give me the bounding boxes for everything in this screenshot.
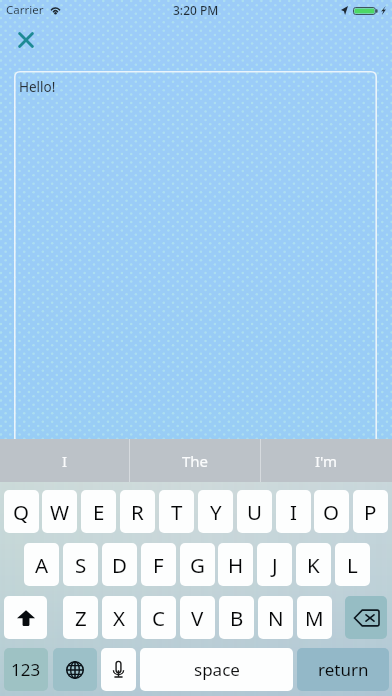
staticText: Z	[75, 604, 87, 632]
button[interactable]: K	[296, 543, 331, 586]
button[interactable]: R	[120, 490, 155, 533]
button[interactable]: M	[297, 596, 332, 639]
staticText: The	[182, 451, 209, 471]
button[interactable]: I	[0, 439, 130, 482]
staticText: N	[268, 604, 284, 632]
button[interactable]: H	[218, 543, 253, 586]
button[interactable]: 123	[4, 648, 48, 691]
button[interactable]: F	[141, 543, 176, 586]
staticText: W	[50, 498, 70, 526]
staticText: T	[171, 498, 183, 526]
button[interactable]: Dictate	[101, 648, 136, 691]
staticText: I	[62, 451, 68, 471]
staticText: G	[190, 551, 205, 579]
button[interactable]: X	[102, 596, 137, 639]
staticText: P	[364, 498, 377, 526]
staticText: V	[191, 604, 204, 632]
staticText: O	[323, 498, 340, 526]
staticText: I	[290, 498, 297, 526]
button[interactable]: Q	[4, 490, 39, 533]
staticText: K	[307, 551, 320, 579]
staticText: X	[113, 604, 126, 632]
button[interactable]: The	[130, 439, 261, 482]
button[interactable]: S	[63, 543, 98, 586]
button[interactable]: Close	[8, 22, 44, 58]
button[interactable]: T	[159, 490, 194, 533]
button[interactable]: return	[297, 648, 389, 691]
staticText: space	[194, 658, 240, 681]
button[interactable]: Z	[63, 596, 98, 639]
button[interactable]: C	[141, 596, 176, 639]
button[interactable]: J	[257, 543, 292, 586]
staticText: U	[247, 498, 262, 526]
staticText: F	[153, 551, 164, 579]
staticText: D	[112, 551, 127, 579]
staticText: return	[318, 658, 369, 681]
button[interactable]: I	[276, 490, 311, 533]
button[interactable]: G	[180, 543, 215, 586]
button[interactable]: O	[314, 490, 349, 533]
button[interactable]: D	[102, 543, 137, 586]
button[interactable]: Y	[198, 490, 233, 533]
staticText: Hello!	[19, 78, 56, 96]
staticText: A	[35, 551, 49, 579]
button[interactable]: L	[335, 543, 370, 586]
staticText: Y	[210, 498, 222, 526]
button[interactable]: Hello!	[14, 71, 377, 439]
staticText: 3:20 PM	[173, 2, 219, 18]
button[interactable]: space	[140, 648, 293, 691]
button[interactable]: Switch keyboard	[53, 648, 97, 691]
staticText: J	[272, 551, 278, 579]
button[interactable]: I'm	[261, 439, 392, 482]
staticText: L	[347, 551, 358, 579]
button[interactable]: V	[180, 596, 215, 639]
staticText: R	[131, 498, 144, 526]
staticText: C	[152, 604, 165, 632]
staticText: Carrier	[6, 2, 44, 18]
button[interactable]: B	[219, 596, 254, 639]
button[interactable]: Backspace	[345, 596, 387, 639]
button[interactable]: N	[258, 596, 293, 639]
button[interactable]: W	[42, 490, 77, 533]
staticText: S	[75, 551, 87, 579]
button[interactable]: Shift	[4, 596, 47, 639]
staticText: H	[228, 551, 244, 579]
staticText: E	[93, 498, 105, 526]
staticText: M	[305, 604, 324, 632]
staticText: B	[230, 604, 244, 632]
staticText: 123	[11, 658, 41, 681]
button[interactable]: U	[237, 490, 272, 533]
button[interactable]: P	[353, 490, 388, 533]
staticText: Q	[13, 498, 30, 526]
button[interactable]: E	[81, 490, 116, 533]
button[interactable]: A	[24, 543, 59, 586]
staticText: I'm	[315, 451, 338, 471]
